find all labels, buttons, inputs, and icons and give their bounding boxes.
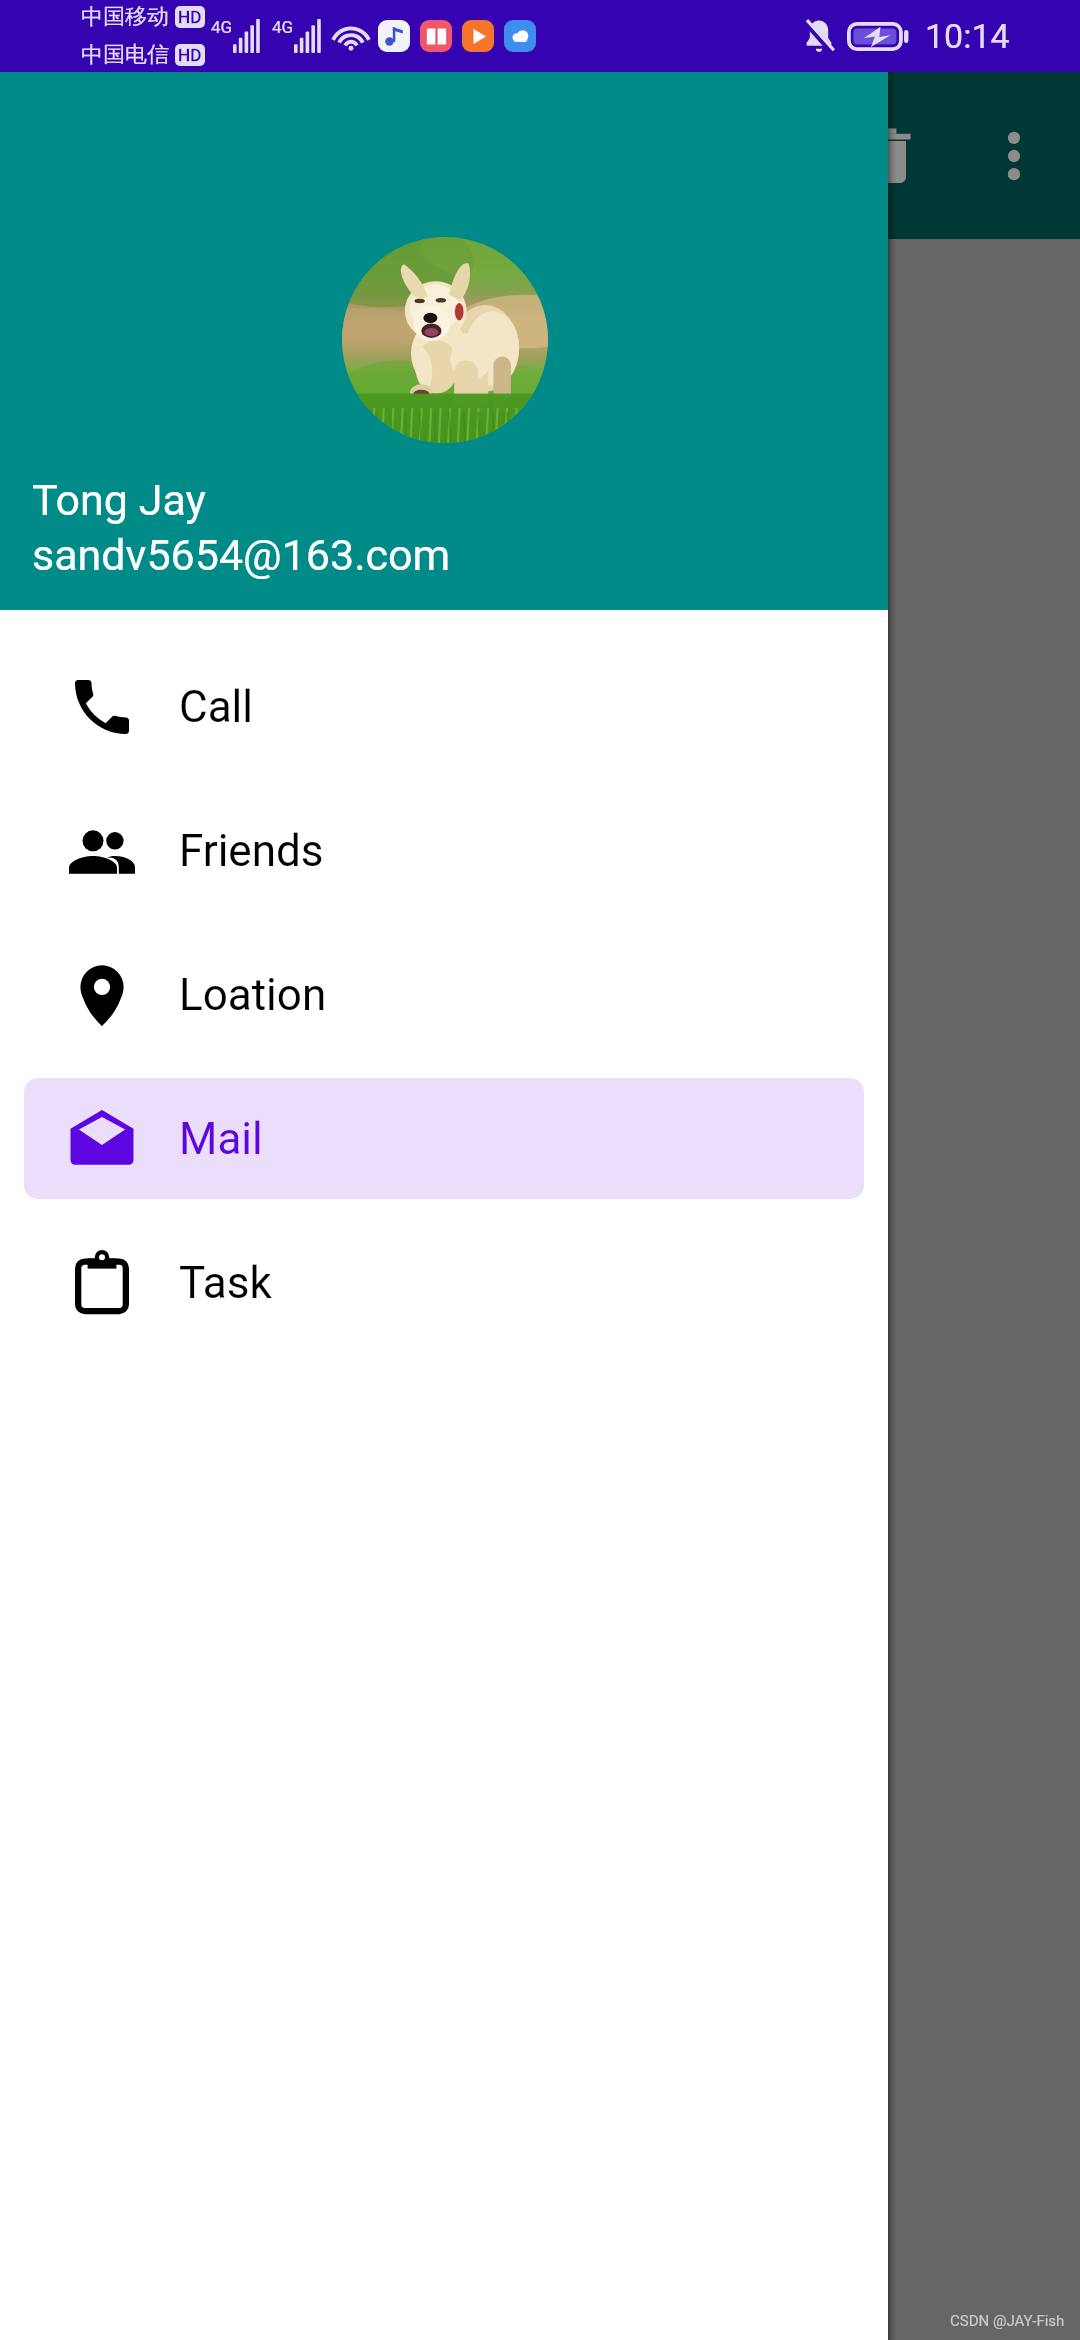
staticText: CSDN @JAY-Fish <box>950 2312 1065 2330</box>
staticText: 4G <box>272 17 294 37</box>
staticText: HD <box>178 7 202 27</box>
staticText: Task <box>179 1257 272 1309</box>
staticText: sandv5654@163.com <box>32 530 451 580</box>
staticText: Mail <box>179 1113 263 1165</box>
staticText: 4G <box>211 17 233 37</box>
staticText: 中国电信 <box>81 41 169 69</box>
button[interactable]: Loation <box>24 934 864 1055</box>
button[interactable]: Mail <box>24 1078 864 1199</box>
staticText: Tong Jay <box>32 475 206 525</box>
staticText: Call <box>179 681 253 733</box>
button[interactable]: Friends <box>24 790 864 911</box>
staticText: HD <box>178 45 202 65</box>
staticText: Friends <box>179 825 324 877</box>
button[interactable]: Task <box>24 1222 864 1343</box>
staticText: 10:14 <box>925 16 1010 56</box>
staticText: Loation <box>179 969 327 1021</box>
button[interactable]: More options <box>962 104 1066 208</box>
button[interactable]: Call <box>24 646 864 767</box>
button[interactable]: Delete <box>836 104 940 208</box>
staticText: 中国移动 <box>81 3 169 31</box>
